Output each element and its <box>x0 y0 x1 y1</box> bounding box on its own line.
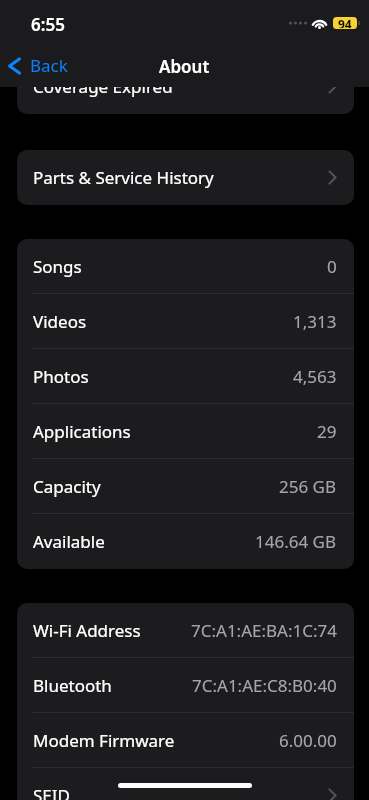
staticText: Back <box>30 54 68 77</box>
staticText: Available <box>33 530 105 553</box>
staticText: Coverage Expired <box>33 75 173 98</box>
staticText: About <box>159 55 210 78</box>
staticText: 7C:A1:AE:BA:1C:74 <box>191 619 337 642</box>
button[interactable]: Songs <box>17 239 354 294</box>
staticText: 0 <box>327 255 337 278</box>
staticText: Songs <box>33 255 82 278</box>
staticText: Parts & Service History <box>33 166 214 189</box>
staticText: 29 <box>317 420 337 443</box>
button[interactable]: Available <box>17 514 354 569</box>
staticText: Applications <box>33 420 131 443</box>
button[interactable]: Wi-Fi Address <box>17 603 354 658</box>
staticText: Wi-Fi Address <box>33 619 141 642</box>
other: Back <box>8 57 21 75</box>
button[interactable]: Videos <box>17 294 354 349</box>
staticText: 94 <box>338 17 352 28</box>
staticText: 6:55 <box>31 13 65 36</box>
staticText: 256 GB <box>279 475 337 498</box>
staticText: Bluetooth <box>33 674 112 697</box>
button[interactable]: Applications <box>17 404 354 459</box>
button[interactable]: Photos <box>17 349 354 404</box>
staticText: 6.00.00 <box>279 729 337 752</box>
button[interactable]: SEID <box>17 768 354 800</box>
button[interactable]: Bluetooth <box>17 658 354 713</box>
staticText: 1,313 <box>293 310 337 333</box>
staticText: Photos <box>33 365 89 388</box>
staticText: 7C:A1:AE:C8:B0:40 <box>192 674 337 697</box>
button[interactable]: Modem Firmware <box>17 713 354 768</box>
button[interactable]: Coverage Expired <box>17 59 354 114</box>
button[interactable]: Back <box>8 54 68 77</box>
staticText: SEID <box>33 784 70 800</box>
staticText: 146.64 GB <box>255 530 337 553</box>
button[interactable]: Parts & Service History <box>17 150 354 205</box>
staticText: Capacity <box>33 475 101 498</box>
staticText: Modem Firmware <box>33 729 175 752</box>
staticText: 4,563 <box>293 365 337 388</box>
staticText: Videos <box>33 310 87 333</box>
button[interactable]: Capacity <box>17 459 354 514</box>
